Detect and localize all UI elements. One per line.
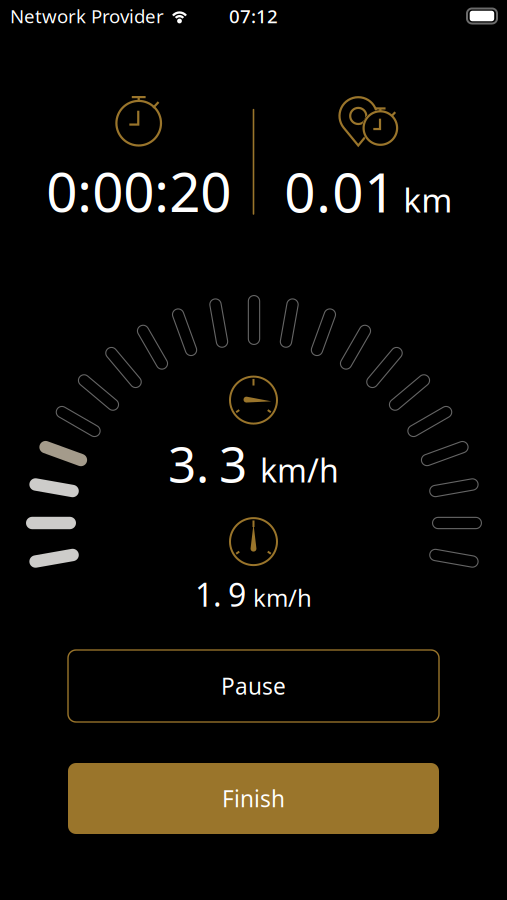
staticText: 0.01 [284, 155, 395, 228]
staticText: 3. [168, 431, 209, 496]
staticText: km/h [260, 449, 339, 491]
button[interactable]: Pause [68, 650, 439, 722]
staticText: km [403, 177, 452, 222]
staticText: 07:12 [229, 4, 278, 28]
staticText: Finish [222, 783, 285, 813]
button[interactable]: Finish [68, 763, 439, 834]
staticText: 9 [228, 573, 246, 616]
staticText: 1. [195, 573, 222, 616]
staticText: 0:00:20 [46, 154, 231, 227]
staticText: km/h [253, 581, 312, 613]
staticText: 3 [219, 431, 247, 496]
staticText: Network Provider [10, 4, 164, 28]
staticText: Pause [221, 671, 286, 701]
